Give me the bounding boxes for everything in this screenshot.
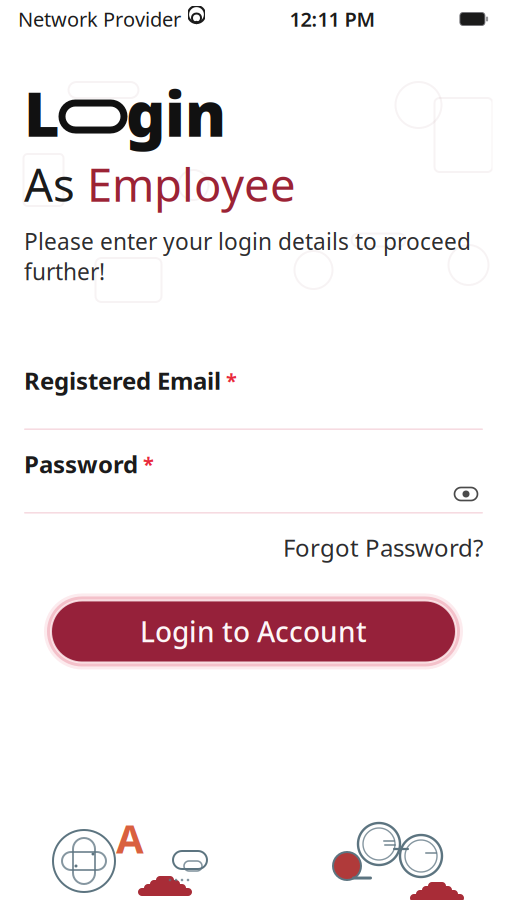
staticText: Forgot Password? <box>283 532 483 563</box>
staticText: gin <box>126 72 226 154</box>
staticText: L <box>24 72 60 154</box>
button[interactable]: Login to Account <box>44 593 463 669</box>
staticText: Network Provider <box>18 6 181 32</box>
button[interactable]: Show password <box>449 479 483 509</box>
staticText: A <box>116 811 144 864</box>
staticText: Password <box>24 448 138 480</box>
staticText: Login to Account <box>140 613 367 650</box>
staticText: * <box>138 451 154 477</box>
staticText: * <box>221 367 237 394</box>
staticText: Employee <box>87 154 296 214</box>
staticText: 12:11 PM <box>289 6 375 32</box>
button[interactable]: Forgot Password? <box>283 528 483 567</box>
staticText: Registered Email <box>24 364 221 396</box>
staticText: As <box>24 154 87 214</box>
staticText: Please enter your login details to proce… <box>24 226 471 286</box>
